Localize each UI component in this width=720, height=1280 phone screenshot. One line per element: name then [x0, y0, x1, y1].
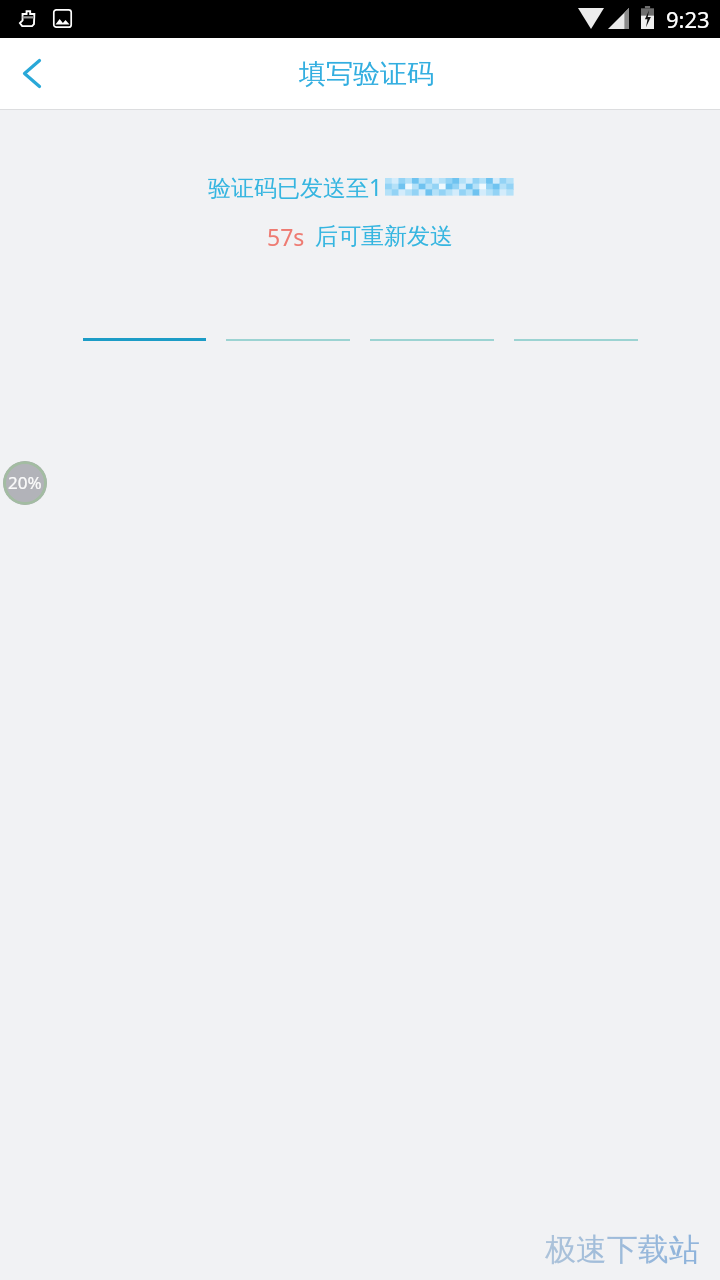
button[interactable]: Verification code digit 1	[83, 311, 206, 341]
staticText: 验证码已发送至1	[208, 171, 383, 202]
staticText: 极速下载站	[545, 1230, 700, 1269]
staticText: 后可重新发送	[315, 222, 453, 251]
button[interactable]: Download progress 20%	[3, 461, 47, 505]
button[interactable]: Back	[0, 38, 68, 110]
staticText: 填写验证码	[299, 57, 434, 91]
button[interactable]: Verification code digit 2	[226, 311, 350, 341]
staticText: 57s	[267, 221, 305, 252]
button[interactable]: Verification code digit 3	[370, 311, 494, 341]
staticText: 9:23	[666, 4, 710, 34]
staticText: 20%	[8, 471, 42, 494]
button[interactable]: Verification code digit 4	[514, 311, 638, 341]
